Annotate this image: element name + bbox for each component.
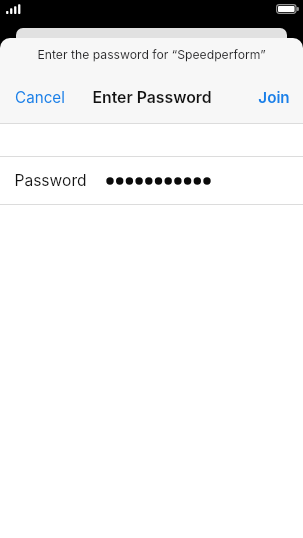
button[interactable]: Cancel (0, 84, 77, 110)
staticText: Enter Password (92, 88, 212, 107)
button[interactable]: Join (246, 84, 303, 110)
other: Cellular signal strength (0, 0, 303, 29)
other: Battery full (0, 0, 303, 29)
button[interactable]: Password (0, 157, 303, 204)
staticText: Enter the password for “Speedperform” (37, 47, 266, 62)
staticText: Cancel (15, 88, 65, 106)
staticText: Password (14, 171, 87, 190)
staticText: Join (258, 88, 290, 106)
